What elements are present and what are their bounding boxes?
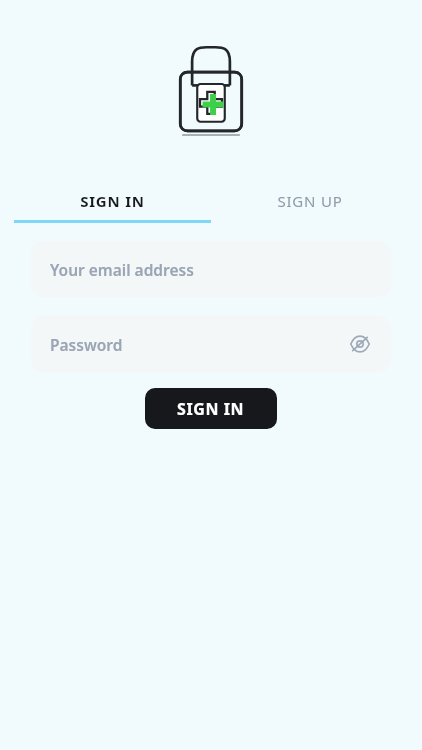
button[interactable]: Your email address — [31, 241, 391, 297]
staticText: SIGN UP — [277, 191, 343, 211]
staticText: SIGN IN — [80, 191, 145, 211]
button[interactable]: SIGN IN — [145, 388, 277, 429]
staticText: SIGN IN — [177, 398, 245, 420]
staticText: Your email address — [50, 259, 373, 280]
button[interactable]: Password — [31, 316, 391, 372]
staticText: Password — [50, 334, 347, 355]
button[interactable]: SIGN IN — [14, 182, 211, 223]
button[interactable]: Show password — [347, 331, 373, 357]
button[interactable]: SIGN UP — [211, 182, 408, 223]
